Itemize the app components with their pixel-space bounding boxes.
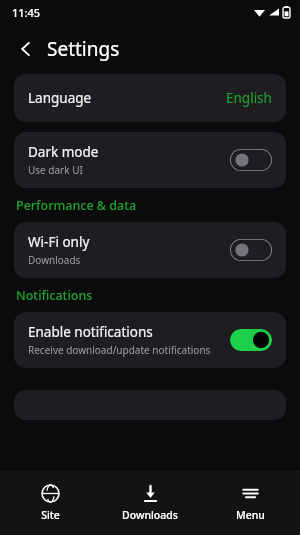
staticText: 11:45 [12, 5, 41, 20]
button[interactable]: Wi-Fi only [14, 222, 286, 278]
staticText: Settings [47, 36, 120, 62]
staticText: Receive download/update notifications [28, 343, 211, 357]
staticText: Performance & data [16, 197, 137, 214]
button[interactable]: Toggle off [230, 239, 272, 261]
staticText: English [226, 89, 272, 107]
button[interactable]: Back [8, 31, 44, 67]
staticText: Menu [236, 508, 265, 522]
staticText: Notifications [16, 287, 93, 304]
staticText: Site [41, 508, 60, 522]
staticText: Language [28, 89, 92, 107]
staticText: Downloads [28, 253, 81, 267]
staticText: Use dark UI [28, 163, 83, 177]
staticText: Downloads [122, 508, 178, 522]
button[interactable]: Language [14, 74, 286, 122]
button[interactable]: Dark mode [14, 132, 286, 188]
button[interactable]: Downloads [100, 471, 200, 535]
button[interactable]: Toggle on [230, 329, 272, 351]
button[interactable]: Enable notifications [14, 312, 286, 368]
staticText: Dark mode [28, 143, 99, 161]
button[interactable]: Menu [200, 471, 300, 535]
staticText: Wi-Fi only [28, 233, 90, 251]
button[interactable]: Site [0, 471, 100, 535]
staticText: Enable notifications [28, 323, 153, 341]
button[interactable]: Toggle off [230, 149, 272, 171]
